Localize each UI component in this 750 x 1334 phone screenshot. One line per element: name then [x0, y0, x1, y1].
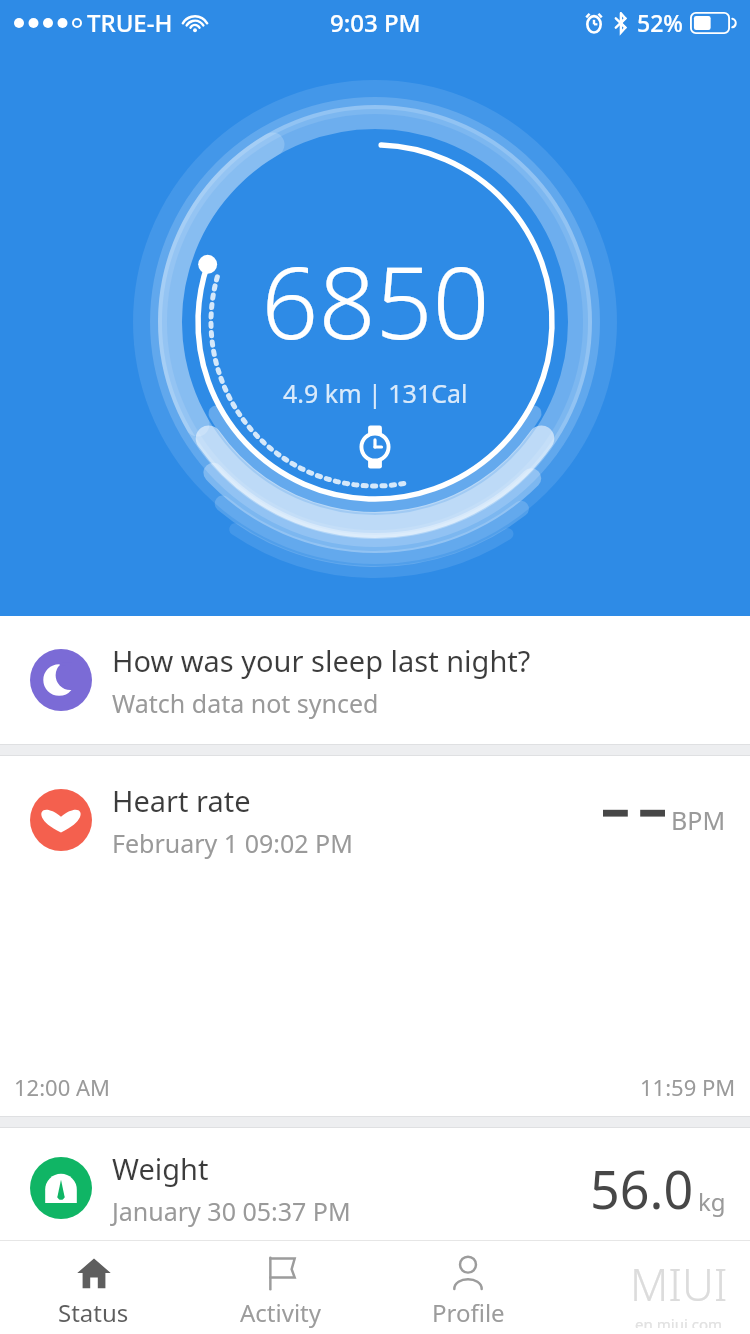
- staticText: How was your sleep last night?: [112, 641, 531, 680]
- staticText: 9:03 PM: [330, 6, 421, 39]
- staticText: 56.0: [590, 1153, 694, 1224]
- staticText: Status: [58, 1296, 129, 1329]
- staticText: TRUE-H: [87, 6, 173, 39]
- button[interactable]: How was your sleep last night?: [0, 616, 750, 744]
- staticText: Heart rate: [112, 781, 251, 820]
- staticText: Activity: [240, 1296, 321, 1329]
- staticText: Watch data not synced: [112, 686, 379, 720]
- staticText: 52%: [637, 7, 683, 38]
- staticText: February 1 09:02 PM: [112, 826, 353, 860]
- button[interactable]: Status: [0, 1240, 187, 1334]
- staticText: 4.9 km | 131Cal: [283, 376, 468, 410]
- button[interactable]: Weight: [0, 1128, 750, 1248]
- staticText: kg: [698, 1185, 726, 1218]
- staticText: 11:59 PM: [640, 1072, 736, 1102]
- staticText: MIUI: [630, 1254, 728, 1314]
- button[interactable]: Heart rate: [0, 756, 750, 1116]
- staticText: 6850: [261, 232, 490, 368]
- staticText: Profile: [432, 1296, 505, 1329]
- staticText: Weight: [112, 1149, 209, 1188]
- staticText: en.miui.com: [635, 1314, 723, 1328]
- button[interactable]: Activity: [187, 1240, 374, 1334]
- button[interactable]: Profile: [374, 1240, 562, 1334]
- staticText: BPM: [671, 803, 726, 837]
- staticText: January 30 05:37 PM: [112, 1194, 351, 1228]
- staticText: 12:00 AM: [14, 1072, 110, 1102]
- button[interactable]: Watch sync: [352, 424, 398, 470]
